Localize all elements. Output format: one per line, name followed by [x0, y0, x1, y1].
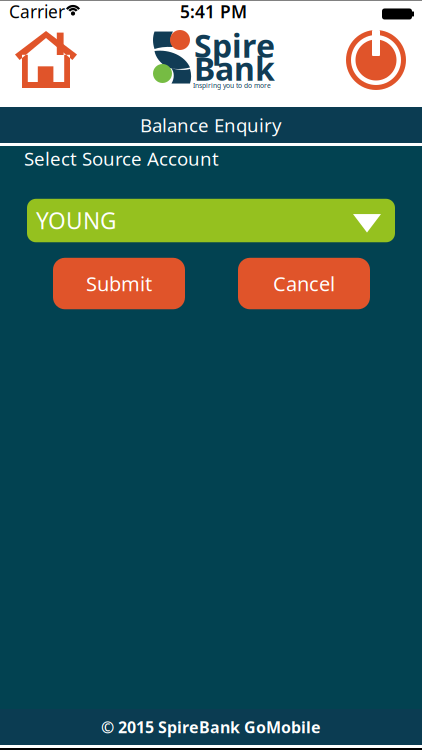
staticText: Balance Enquiry	[140, 113, 282, 137]
staticText: Spire	[194, 24, 275, 66]
button[interactable]: YOUNG	[27, 199, 395, 242]
staticText: © 2015 SpireBank GoMobile	[101, 716, 321, 738]
staticText: Bank	[194, 47, 275, 89]
staticText: YOUNG	[36, 205, 117, 236]
button[interactable]: Cancel	[238, 258, 370, 309]
button[interactable]: Submit	[53, 258, 185, 309]
button[interactable]: Log out	[346, 30, 406, 90]
button[interactable]: Home	[15, 31, 77, 88]
staticText: 5:41 PM	[180, 0, 247, 23]
staticText: Carrier	[9, 0, 65, 23]
staticText: Cancel	[273, 270, 335, 297]
staticText: Inspiring you to do more	[193, 81, 271, 90]
staticText: Submit	[86, 270, 152, 297]
staticText: Select Source Account	[24, 146, 219, 171]
